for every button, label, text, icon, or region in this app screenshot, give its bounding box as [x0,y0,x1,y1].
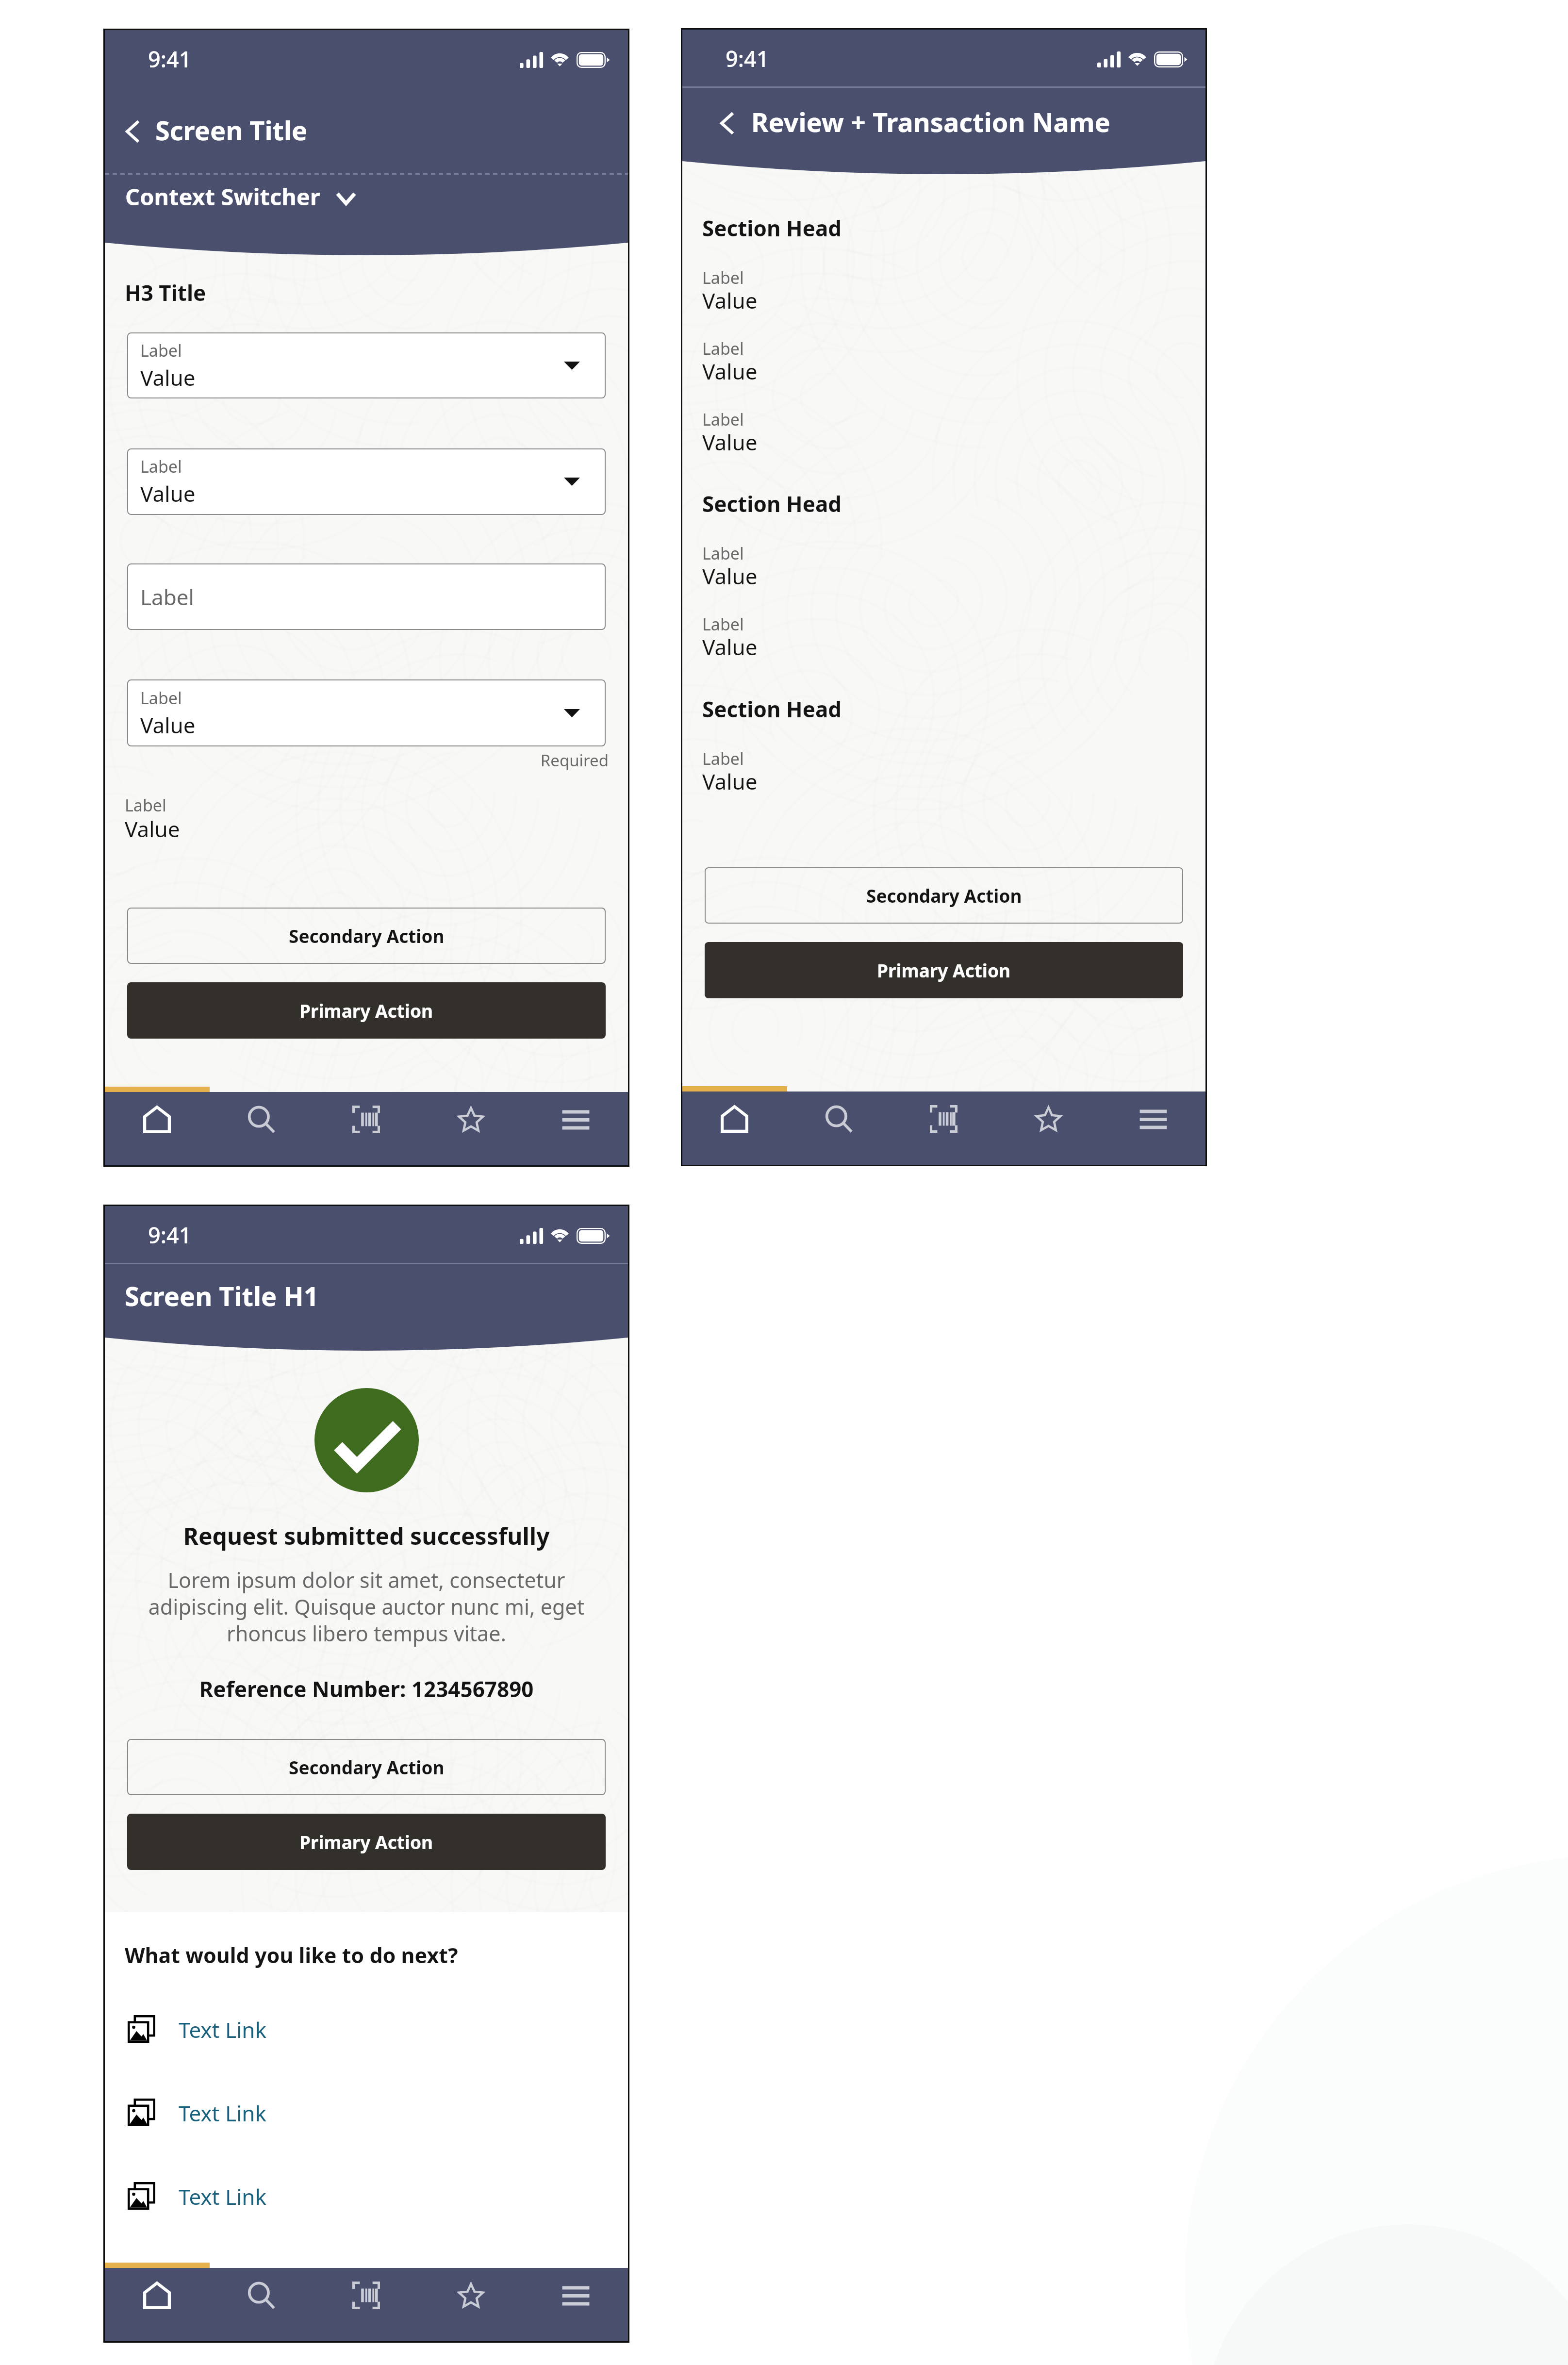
staticText: Value [140,711,196,740]
staticText: Text Link [179,2099,267,2126]
button[interactable]: Label [127,448,606,515]
staticText: Primary Action [299,1830,433,1854]
staticText: Text Link [179,2182,267,2210]
button[interactable]: Favorites [996,1092,1101,1165]
staticText: Value [702,562,758,591]
staticText: Required [105,749,609,771]
staticText: Label [140,687,182,709]
staticText: Value [702,767,758,796]
staticText: Label [702,613,744,635]
staticText: Value [702,357,758,386]
button[interactable]: Scan barcode [314,2268,418,2341]
staticText: Label [702,337,744,360]
button[interactable]: Back [115,110,152,148]
button[interactable]: Text Link [128,2015,628,2043]
button[interactable]: Primary Action [127,982,606,1039]
staticText: Section Head [702,695,842,724]
staticText: Label [702,408,744,430]
staticText: Reference Number: 1234567890 [105,1674,628,1703]
staticText: 9:41 [726,44,769,73]
staticText: Section Head [702,214,842,243]
button[interactable]: Secondary Action [705,867,1183,924]
button[interactable]: Secondary Action [127,908,606,964]
button[interactable]: Primary Action [705,942,1183,998]
button[interactable]: Menu [1101,1092,1205,1165]
staticText: H3 Title [125,278,206,307]
button[interactable]: Menu [523,1092,628,1165]
staticText: Label [140,455,182,478]
button[interactable]: Scan barcode [314,1092,418,1165]
button[interactable]: Text Link [128,2099,628,2126]
staticText: Primary Action [299,998,433,1023]
staticText: Value [702,286,758,315]
button[interactable]: Scan barcode [891,1092,996,1165]
staticText: Value [140,363,196,392]
staticText: Screen Title [155,112,308,148]
staticText: Section Head [702,489,842,518]
staticText: Secondary Action [289,924,445,948]
staticText: Secondary Action [289,1755,445,1779]
staticText: 9:41 [148,44,192,74]
button[interactable]: Context Switcher [125,167,606,226]
button[interactable]: Search [787,1092,891,1165]
staticText: Label [702,542,744,564]
staticText: Value [125,814,180,843]
button[interactable]: Search [209,2268,314,2341]
button[interactable]: Favorites [418,2268,523,2341]
button[interactable]: Label [127,563,606,630]
button[interactable]: Home [105,1092,209,1165]
staticText: Label [702,747,744,770]
button[interactable]: Label [127,679,606,746]
staticText: Label [140,339,182,362]
button[interactable]: Secondary Action [127,1739,606,1795]
button[interactable]: Menu [523,2268,628,2341]
staticText: Screen Title H1 [125,1278,319,1314]
staticText: Value [140,479,196,508]
staticText: Label [125,794,166,816]
staticText: Secondary Action [866,883,1022,908]
button[interactable]: Favorites [418,1092,523,1165]
staticText: Context Switcher [125,181,320,212]
button[interactable]: Text Link [128,2182,628,2210]
button[interactable]: Back [709,101,747,139]
staticText: 9:41 [148,1220,192,1250]
staticText: What would you like to do next? [125,1941,458,1969]
button[interactable]: Primary Action [127,1814,606,1870]
staticText: Value [702,632,758,662]
button[interactable]: Search [209,1092,314,1165]
staticText: Request submitted successfully [105,1520,628,1552]
button[interactable]: Label [127,332,606,398]
button[interactable]: Home [105,2268,209,2341]
button[interactable]: Home [682,1092,787,1165]
staticText: Primary Action [877,958,1011,982]
staticText: Review + Transaction Name [751,104,1110,140]
staticText: Label [140,582,194,612]
staticText: Label [702,266,744,289]
staticText: Lorem ipsum dolor sit amet, consectetur … [127,1566,606,1648]
staticText: Value [702,428,758,457]
staticText: Text Link [179,2015,267,2043]
